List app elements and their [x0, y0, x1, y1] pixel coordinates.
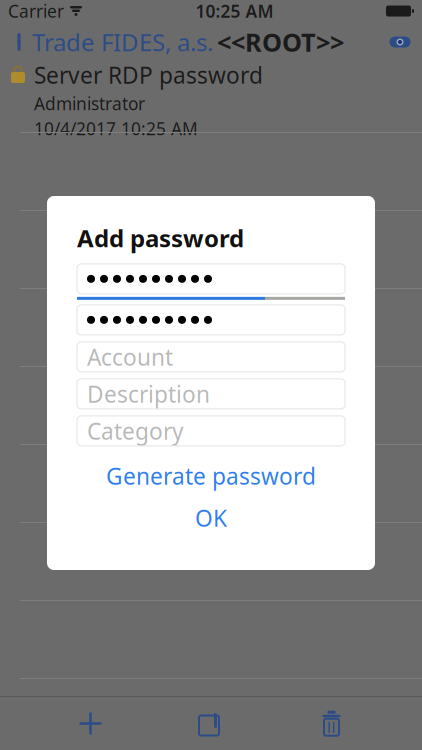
button[interactable]: Show passwords [378, 22, 422, 62]
staticText: Category [87, 416, 184, 446]
staticText: Carrier [8, 0, 64, 22]
staticText: Trade FIDES, a.s. [32, 26, 213, 58]
staticText: Server RDP password [34, 60, 263, 90]
staticText: <<ROOT>> [217, 25, 344, 59]
button[interactable]: OK [77, 498, 345, 538]
button[interactable]: Trade FIDES, a.s. [0, 22, 217, 62]
button[interactable]: Generate password [77, 454, 345, 498]
button[interactable]: Delete [301, 701, 361, 745]
staticText: 10/4/2017 10:25 AM [34, 117, 198, 140]
staticText: 10:25 AM [195, 0, 273, 22]
staticText: Generate password [106, 461, 316, 491]
button[interactable]: Add [60, 701, 120, 745]
staticText: Account [87, 342, 173, 372]
staticText: Description [87, 379, 210, 409]
staticText: Add password [77, 222, 244, 254]
staticText: Administrator [34, 92, 145, 115]
staticText: OK [195, 503, 227, 533]
button[interactable]: Edit [181, 701, 241, 745]
